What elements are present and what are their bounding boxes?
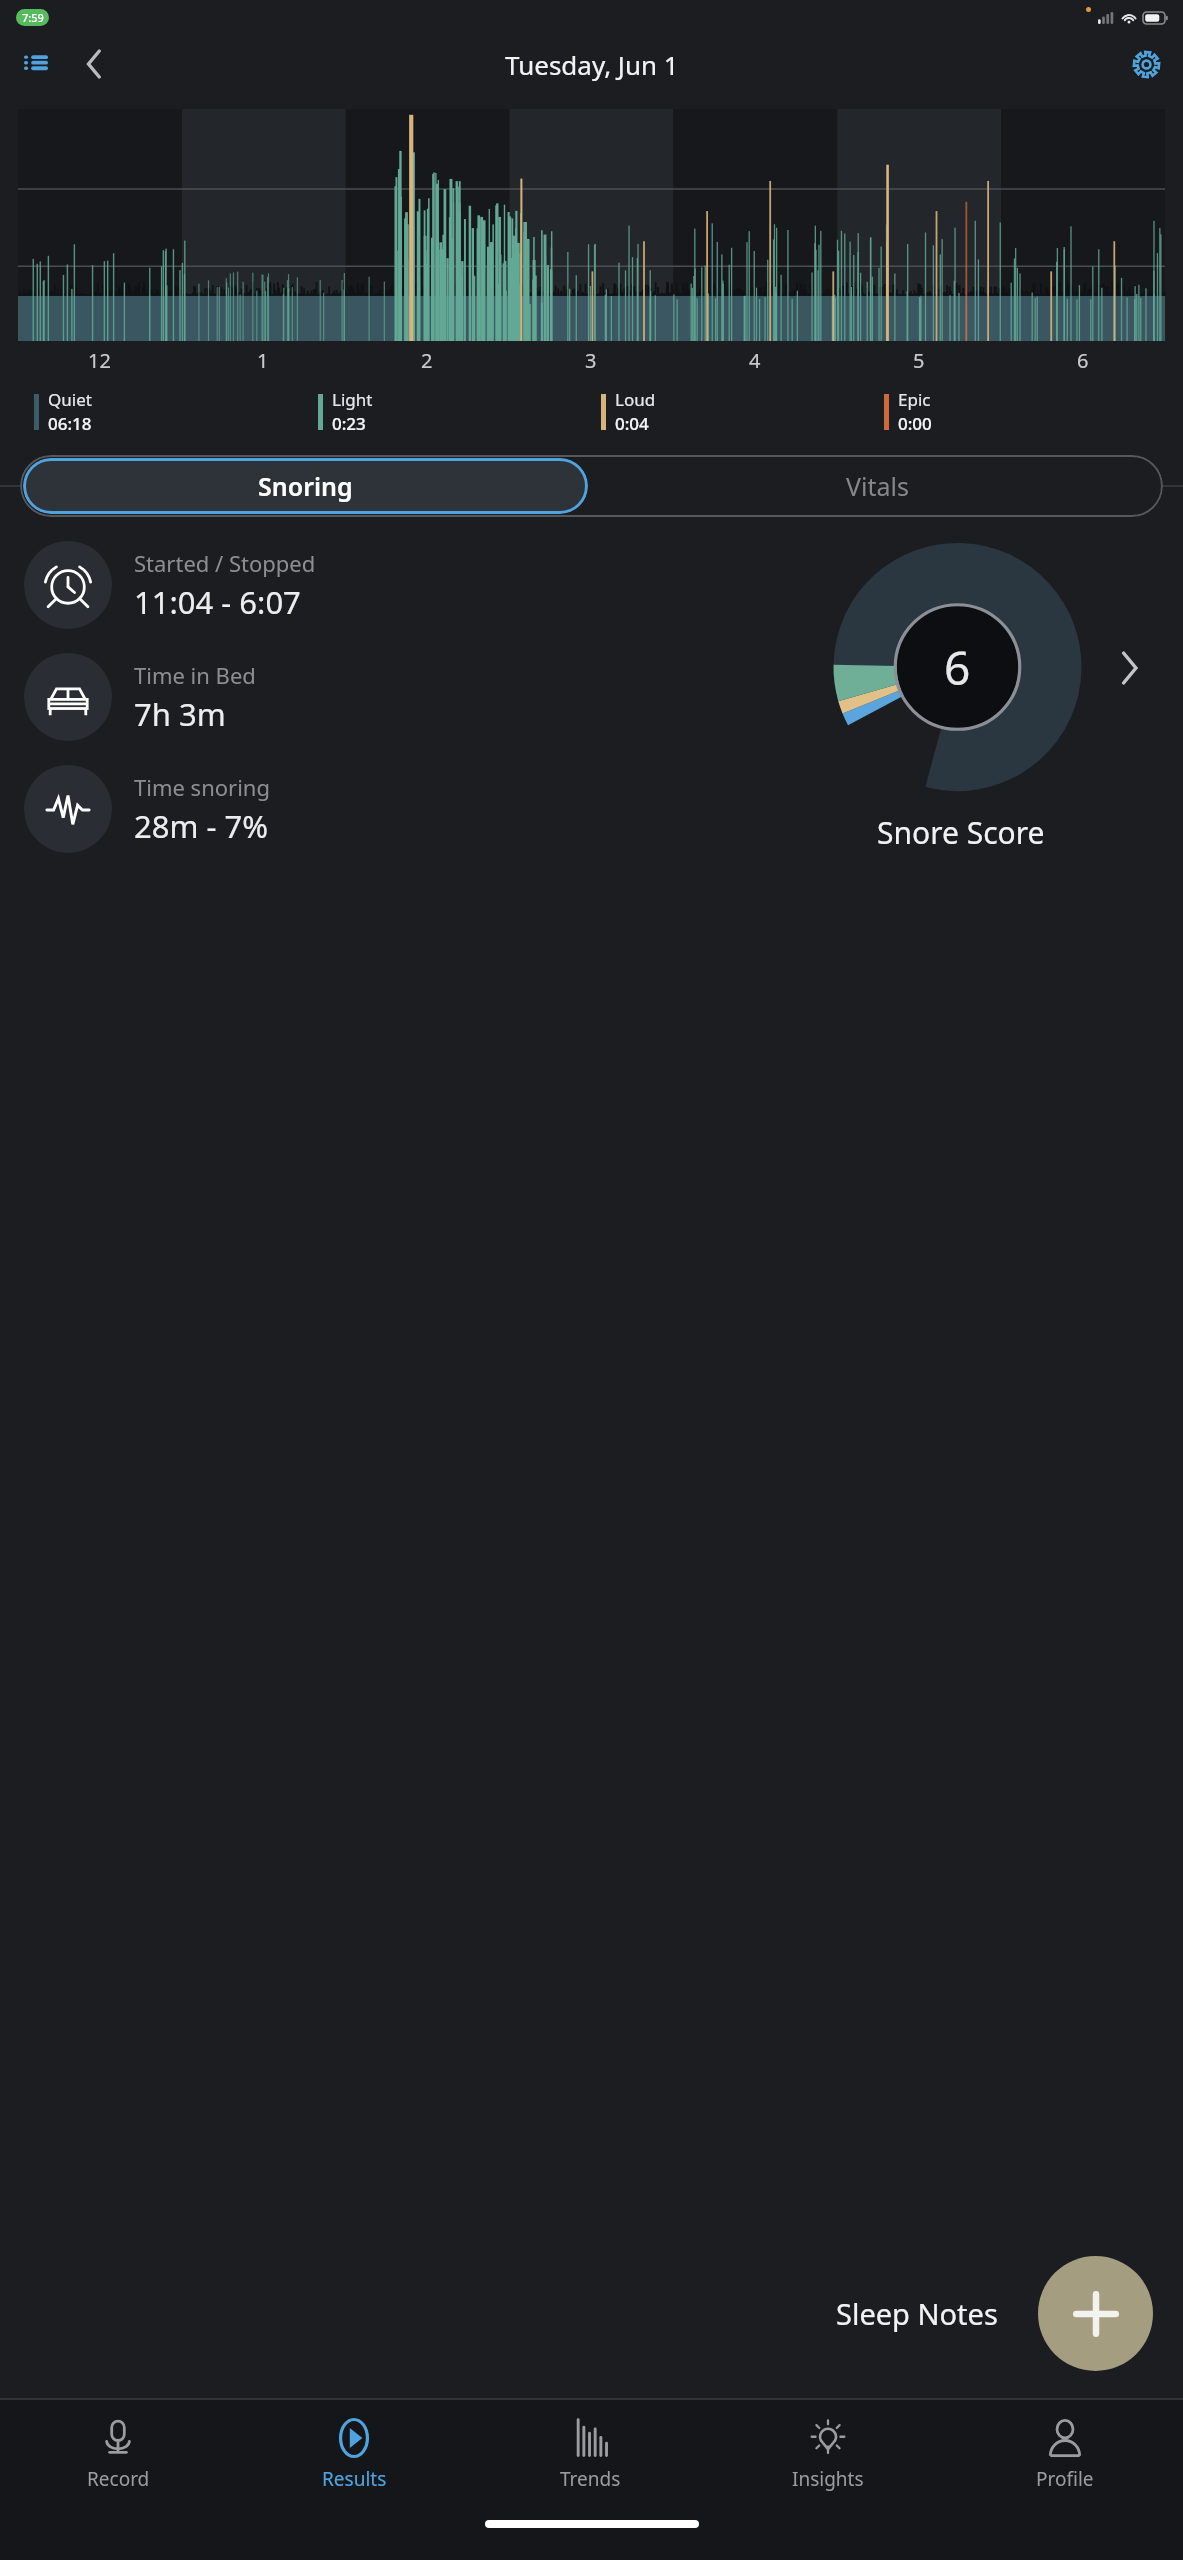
staticText: Time in Bed xyxy=(134,660,256,690)
staticText: Insights xyxy=(792,2466,864,2492)
staticText: 06:18 xyxy=(48,412,92,435)
staticText: Loud xyxy=(615,388,656,411)
staticText: Time snoring xyxy=(134,772,270,802)
button[interactable]: Vitals xyxy=(591,455,1163,517)
staticText: Results xyxy=(322,2466,387,2492)
button[interactable]: Settings xyxy=(1123,41,1169,87)
staticText: Epic xyxy=(898,388,931,411)
staticText: 7h 3m xyxy=(134,693,226,735)
staticText: Vitals xyxy=(846,469,909,503)
staticText: 3 xyxy=(585,347,597,374)
button[interactable]: List xyxy=(14,42,58,86)
staticText: 0:04 xyxy=(615,412,649,435)
staticText: 28m - 7% xyxy=(134,805,269,847)
button[interactable]: Add sleep note xyxy=(1038,2256,1153,2371)
staticText: Sleep Notes xyxy=(836,2294,998,2333)
staticText: 12 xyxy=(88,347,111,374)
staticText: Trends xyxy=(560,2466,621,2492)
staticText: Profile xyxy=(1036,2466,1094,2492)
staticText: Snoring xyxy=(258,469,353,503)
staticText: Started / Stopped xyxy=(134,548,316,578)
other: Next xyxy=(1109,648,1149,688)
button[interactable]: Results xyxy=(236,2400,472,2508)
button[interactable]: Trends xyxy=(472,2400,709,2508)
staticText: 6 xyxy=(944,636,971,699)
staticText: 4 xyxy=(749,347,761,374)
staticText: Light xyxy=(332,388,373,411)
button[interactable]: 6 xyxy=(819,543,1149,853)
staticText: Quiet xyxy=(48,388,92,411)
staticText: 6 xyxy=(1077,347,1089,374)
staticText: 7:59 xyxy=(22,10,44,25)
staticText: Record xyxy=(87,2466,150,2492)
button[interactable]: Back xyxy=(72,42,116,86)
button[interactable]: Snoring xyxy=(23,458,588,514)
staticText: 0:00 xyxy=(898,412,932,435)
staticText: Tuesday, Jun 1 xyxy=(505,47,679,82)
button[interactable]: Profile xyxy=(946,2400,1183,2508)
staticText: 0:23 xyxy=(332,412,366,435)
button[interactable]: Record xyxy=(0,2400,236,2508)
button[interactable]: Insights xyxy=(709,2400,946,2508)
staticText: 5 xyxy=(913,347,925,374)
staticText: 1 xyxy=(257,347,269,374)
staticText: 2 xyxy=(421,347,433,374)
staticText: 11:04 - 6:07 xyxy=(134,581,301,623)
staticText: Snore Score xyxy=(877,812,1045,853)
